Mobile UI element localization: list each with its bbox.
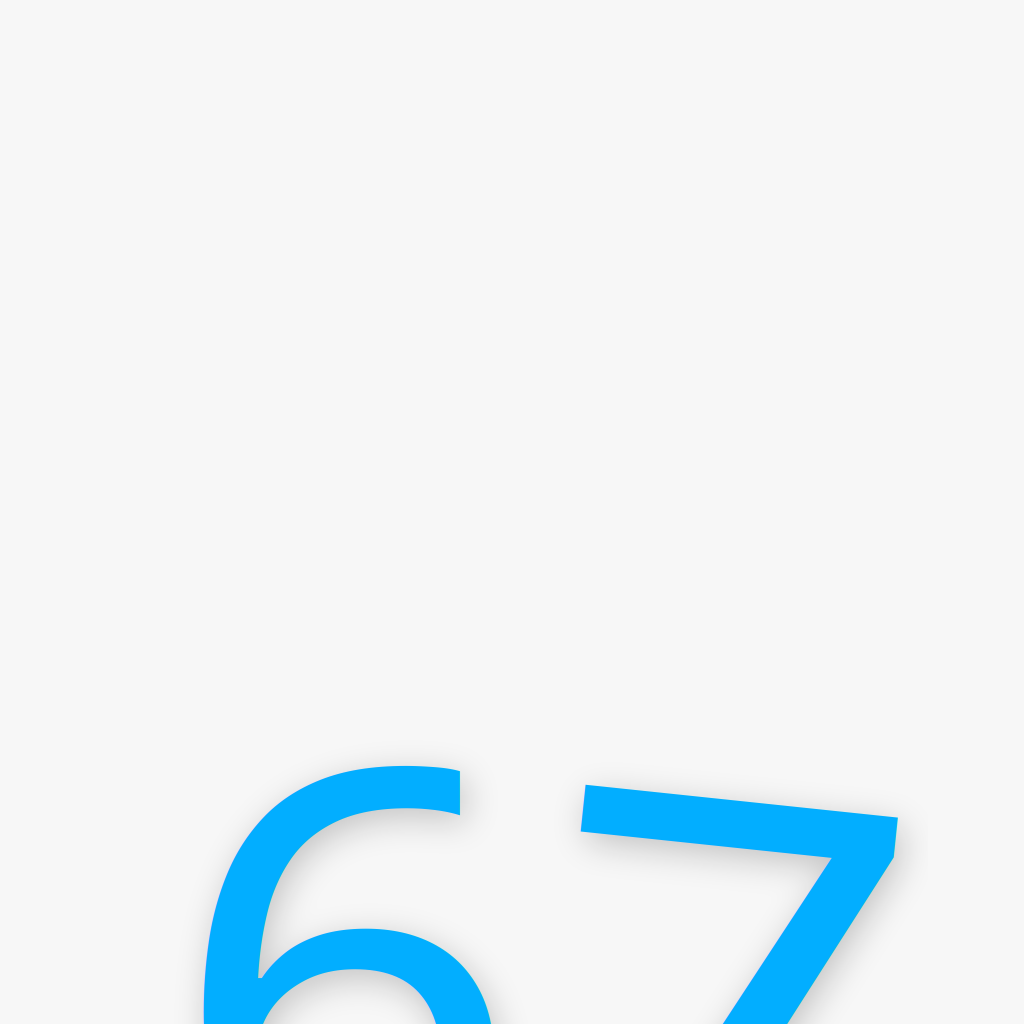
staticText: 7 — [555, 602, 891, 1024]
staticText: 6 — [178, 573, 514, 1024]
